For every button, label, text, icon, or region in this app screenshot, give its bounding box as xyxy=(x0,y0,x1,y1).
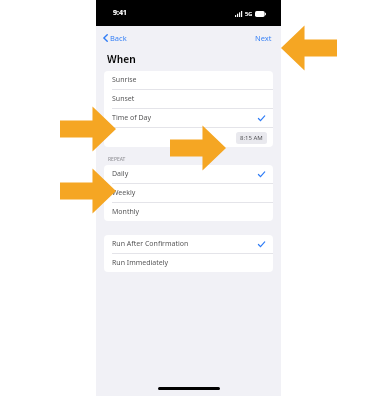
staticText: When xyxy=(107,52,136,66)
button[interactable]: Next xyxy=(255,33,272,43)
button[interactable]: Sunset xyxy=(104,90,273,109)
button[interactable]: Daily xyxy=(104,165,273,184)
button[interactable]: Back xyxy=(103,33,127,43)
staticText: Next xyxy=(255,33,272,43)
staticText: Time of Day xyxy=(112,113,152,123)
staticText: Back xyxy=(110,33,127,43)
button[interactable]: 8:15 AM xyxy=(104,128,273,147)
button[interactable]: Weekly xyxy=(104,184,273,203)
staticText: 5G xyxy=(245,10,253,17)
button[interactable]: 8:15 AM xyxy=(236,132,267,144)
staticText: Sunrise xyxy=(112,75,137,85)
staticText: Daily xyxy=(112,169,129,179)
staticText: REPEAT xyxy=(108,156,126,163)
staticText: Run After Confirmation xyxy=(112,239,189,249)
staticText: Monthly xyxy=(112,207,140,217)
button[interactable]: Monthly xyxy=(104,203,273,221)
button[interactable]: Run After Confirmation xyxy=(104,235,273,254)
other: Selected xyxy=(258,115,265,122)
staticText: Run Immediately xyxy=(112,258,169,268)
button[interactable]: Run Immediately xyxy=(104,254,273,272)
other: Selected xyxy=(258,171,265,178)
staticText: Sunset xyxy=(112,94,135,104)
button[interactable]: Time of Day xyxy=(104,109,273,128)
staticText: Weekly xyxy=(112,188,136,198)
other: Selected xyxy=(258,241,265,248)
button[interactable]: Sunrise xyxy=(104,71,273,90)
staticText: 9:41 xyxy=(113,8,127,18)
staticText: 8:15 AM xyxy=(240,134,263,142)
